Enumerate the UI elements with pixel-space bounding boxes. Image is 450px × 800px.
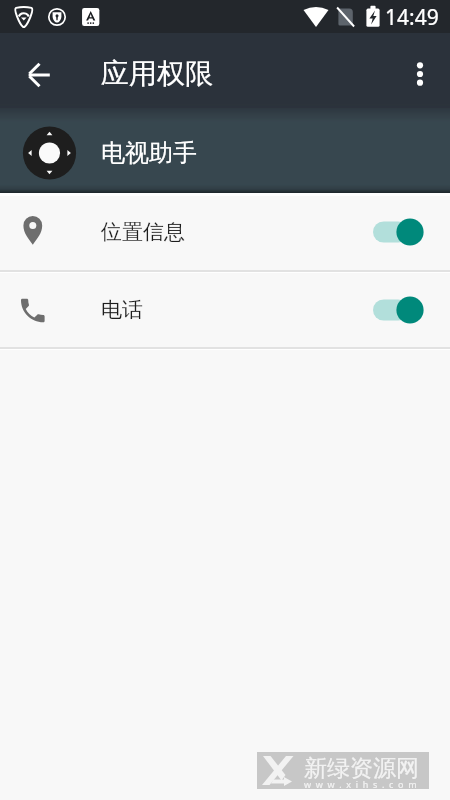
button[interactable] (0, 108, 450, 193)
button[interactable]: Toggle permission (373, 214, 425, 250)
staticText: 位置信息 (101, 219, 185, 245)
staticText: 电话 (101, 297, 143, 323)
staticText: 应用权限 (101, 56, 213, 91)
button[interactable]: Toggle permission (373, 292, 425, 328)
button[interactable]: 位置信息 (0, 193, 450, 270)
staticText: w w w . x i h s . c o m (304, 778, 417, 790)
button[interactable]: Back (17, 53, 61, 97)
staticText: 电视助手 (101, 138, 197, 168)
button[interactable]: More options (398, 52, 442, 96)
staticText: 新绿资源网 (304, 754, 419, 783)
staticText: 14:49 (385, 3, 439, 32)
button[interactable]: 电话 (0, 273, 450, 347)
